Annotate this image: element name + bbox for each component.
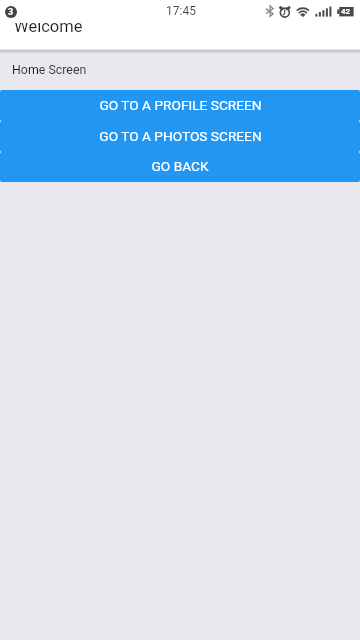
button[interactable]: GO TO A PROFILE SCREEN [0, 90, 360, 121]
staticText: 42 [341, 7, 351, 16]
button[interactable]: GO TO A PHOTOS SCREEN [0, 121, 360, 152]
staticText: GO TO A PROFILE SCREEN [99, 97, 262, 113]
staticText: 3 [8, 7, 14, 18]
button[interactable]: GO BACK [0, 152, 360, 182]
staticText: GO TO A PHOTOS SCREEN [99, 128, 262, 144]
staticText: Home Screen [12, 62, 87, 77]
staticText: GO BACK [151, 158, 209, 174]
staticText: Welcome [14, 17, 83, 36]
staticText: 17:45 [166, 4, 196, 18]
other: Notifications [5, 6, 17, 18]
